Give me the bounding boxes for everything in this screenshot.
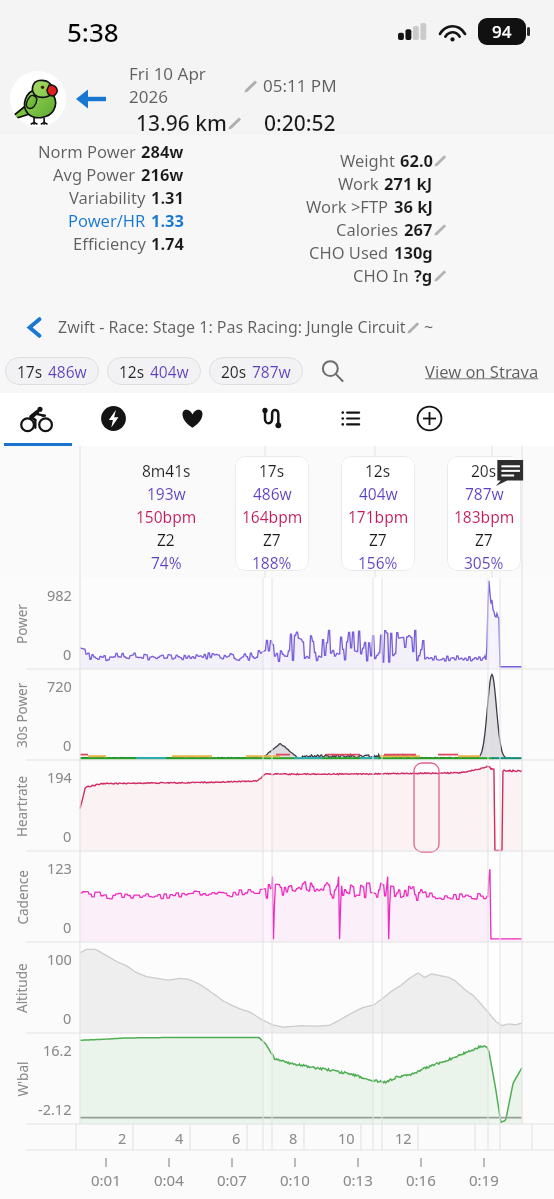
staticText: Variability — [69, 186, 146, 208]
staticText: 94 — [492, 20, 512, 43]
staticText: 0:10 — [280, 1170, 310, 1190]
button[interactable]: Comments — [495, 459, 524, 486]
button[interactable]: Power/HR — [0, 208, 198, 231]
button[interactable]: 8m41s — [129, 456, 203, 571]
button[interactable]: Work >FTP — [197, 194, 447, 217]
button[interactable]: Laps — [311, 393, 390, 443]
button[interactable]: 12s — [341, 456, 415, 571]
staticText: Z2 — [157, 529, 175, 550]
staticText: 0:16 — [406, 1170, 436, 1190]
staticText: 188% — [252, 552, 292, 571]
button[interactable]: Profile — [10, 71, 66, 127]
staticText: Power — [13, 604, 31, 644]
staticText: 183bpm — [454, 506, 515, 527]
button[interactable]: Power — [74, 393, 153, 443]
staticText: 123 — [47, 858, 72, 878]
staticText: Power/HR — [68, 209, 146, 231]
button[interactable]: Heart rate — [153, 393, 232, 443]
staticText: 10 — [338, 1128, 355, 1148]
staticText: -2.12 — [38, 1099, 72, 1119]
button[interactable]: CHO In — [197, 263, 447, 286]
staticText: Z7 — [369, 529, 387, 550]
staticText: 156% — [358, 552, 398, 571]
staticText: 05:11 PM — [263, 74, 337, 97]
staticText: 305% — [464, 552, 504, 571]
button[interactable]: Weight — [197, 148, 447, 171]
staticText: 0:04 — [154, 1170, 184, 1190]
staticText: 404w — [359, 483, 398, 504]
staticText: Weight — [340, 149, 395, 171]
staticText: Cadence — [13, 869, 31, 924]
button[interactable]: Avg Power — [0, 162, 198, 185]
staticText: Avg Power — [53, 163, 136, 185]
staticText: Calories — [336, 218, 399, 240]
button[interactable]: 20s — [209, 357, 303, 385]
staticText: 0:19 — [469, 1170, 499, 1190]
button[interactable]: Add — [390, 393, 469, 443]
staticText: ?g — [414, 264, 433, 286]
staticText: 787w — [465, 483, 504, 504]
staticText: Altitude — [13, 963, 31, 1013]
button[interactable]: View on Strava — [425, 360, 554, 382]
staticText: CHO Used — [309, 241, 389, 263]
staticText: 20s — [221, 361, 247, 382]
button[interactable]: 17s — [5, 357, 99, 385]
button[interactable]: Back — [76, 77, 124, 121]
staticText: 4 — [175, 1128, 184, 1148]
staticText: ~ — [424, 316, 434, 338]
staticText: Efficiency — [73, 232, 146, 254]
button[interactable]: Norm Power — [0, 139, 198, 162]
button[interactable]: Variability — [0, 185, 198, 208]
staticText: Z7 — [263, 529, 281, 550]
button[interactable]: CHO Used — [197, 240, 447, 263]
staticText: 193w — [147, 483, 186, 504]
button[interactable]: Efficiency — [0, 231, 198, 254]
staticText: 284w — [141, 140, 184, 162]
staticText: 0 — [63, 917, 72, 937]
staticText: 62.0 — [400, 149, 433, 171]
button[interactable]: 20s — [447, 456, 521, 571]
staticText: 16.2 — [43, 1040, 72, 1060]
staticText: 1.33 — [151, 209, 184, 231]
button[interactable]: Work — [197, 171, 447, 194]
staticText: 1.74 — [151, 232, 184, 254]
staticText: Heartrate — [13, 775, 31, 837]
staticText: 6 — [232, 1128, 241, 1148]
staticText: 0:20:52 — [264, 109, 336, 135]
staticText: CHO In — [353, 264, 409, 286]
staticText: 36 kJ — [394, 195, 433, 217]
staticText: 12 — [395, 1128, 412, 1148]
button[interactable]: Calories — [197, 217, 447, 240]
staticText: 216w — [141, 163, 184, 185]
staticText: 1.31 — [151, 186, 184, 208]
staticText: 74% — [151, 552, 182, 571]
staticText: 720 — [47, 676, 72, 696]
button[interactable]: 17s — [235, 456, 309, 571]
staticText: W'bal — [13, 1061, 31, 1096]
staticText: 8m41s — [142, 460, 191, 481]
staticText: 982 — [47, 585, 72, 605]
staticText: 30s Power — [13, 682, 31, 748]
staticText: 8 — [289, 1128, 298, 1148]
button[interactable]: Zwift - Race: Stage 1: Pas Racing: Jungl… — [0, 305, 554, 349]
staticText: 0:13 — [343, 1170, 373, 1190]
button[interactable]: 12s — [107, 357, 201, 385]
staticText: 0:07 — [217, 1170, 247, 1190]
staticText: Norm Power — [38, 140, 136, 162]
button[interactable]: Cycling — [0, 393, 74, 443]
staticText: 271 kJ — [384, 172, 433, 194]
staticText: Work >FTP — [306, 195, 389, 217]
staticText: 164bpm — [242, 506, 303, 527]
staticText: 17s — [17, 361, 43, 382]
button[interactable]: Search — [314, 353, 350, 389]
staticText: 17s — [259, 460, 285, 481]
staticText: 0 — [63, 826, 72, 846]
staticText: 5:38 — [67, 14, 119, 49]
staticText: 0 — [63, 1008, 72, 1028]
staticText: 12s — [119, 361, 145, 382]
staticText: 20s — [471, 460, 497, 481]
staticText: 150bpm — [136, 506, 197, 527]
button[interactable]: Route — [232, 393, 311, 443]
staticText: 13.96 km — [136, 109, 227, 135]
staticText: 2 — [118, 1128, 127, 1148]
